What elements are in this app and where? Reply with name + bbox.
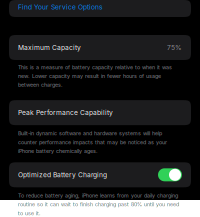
staticText: To reduce battery aging, iPhone learns f… xyxy=(18,192,179,216)
staticText: Optimized Battery Charging xyxy=(18,171,107,179)
button[interactable]: Maximum Capacity xyxy=(0,35,200,60)
staticText: 75% xyxy=(167,43,182,52)
staticText: This is a measure of battery capacity re… xyxy=(18,64,172,88)
staticText: Peak Performance Capability xyxy=(18,109,113,117)
button[interactable]: Peak Performance Capability xyxy=(0,100,200,125)
staticText: Find Your Service Options xyxy=(18,3,103,11)
button[interactable]: Find Your Service Options xyxy=(0,0,200,17)
button[interactable]: Optimized Battery Charging, on xyxy=(0,162,200,187)
staticText: Built-in dynamic software and hardware s… xyxy=(18,130,167,154)
staticText: Maximum Capacity xyxy=(18,43,81,52)
